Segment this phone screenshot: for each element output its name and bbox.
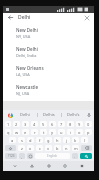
button[interactable]: Clear [83,14,90,21]
staticText: New Delhi [16,46,38,52]
button[interactable]: g [45,137,52,143]
button[interactable]: p [85,129,92,135]
button[interactable]: Google [7,112,13,118]
staticText: ?123 [8,154,15,158]
staticText: n [65,146,68,151]
staticText: a [11,138,14,143]
staticText: NJ, USA [16,91,30,96]
button[interactable]: q [5,129,11,135]
button[interactable]: Delhis [37,110,61,119]
button[interactable]: 5 [40,121,47,127]
staticText: LA, USA [16,72,30,77]
button[interactable]: b [54,145,61,151]
button[interactable]: Hide keyboard [10,161,20,171]
button[interactable]: 1 [5,121,11,127]
button[interactable]: shift [5,145,16,151]
staticText: r [34,130,36,135]
staticText: j [66,138,68,143]
staticText: 0 [87,122,90,127]
button[interactable]: symbols [5,153,17,159]
button[interactable]: 7 [58,121,65,127]
staticText: New Orleans [16,65,44,71]
button[interactable]: f [36,137,43,143]
staticText: m [74,146,78,151]
button[interactable]: n [63,145,70,151]
button[interactable]: l [81,137,88,143]
button[interactable]: Space [35,153,70,159]
button[interactable]: 6 [49,121,56,127]
button[interactable]: Home [44,161,54,171]
staticText: o [78,130,81,135]
button[interactable]: 0 [85,121,92,127]
button[interactable]: Back [27,161,37,171]
staticText: 5 [42,122,45,127]
staticText: Delhi [20,112,30,117]
button[interactable]: u [58,129,65,135]
button[interactable]: r [31,129,38,135]
button[interactable]: x [27,145,34,151]
staticText: 6 [51,122,54,127]
staticText: d [29,138,32,143]
button[interactable]: j [63,137,70,143]
staticText: New Delhi [16,27,38,33]
button[interactable]: o [76,129,83,135]
staticText: c [39,146,41,151]
button[interactable]: New Delhi [3,44,94,60]
staticText: 4 [33,122,36,127]
staticText: 7 [60,122,63,127]
button[interactable]: 2 [13,121,20,127]
staticText: Delhis [43,112,55,117]
staticText: . [74,154,76,159]
staticText: l [84,138,86,143]
button[interactable]: Search [80,153,92,159]
button[interactable]: t [40,129,47,135]
button[interactable]: Back [7,14,14,21]
button[interactable]: Back [3,13,94,22]
button[interactable]: c [36,145,43,151]
staticText: b [56,146,59,151]
button[interactable]: Delhi [13,110,37,119]
button[interactable]: 8 [67,121,74,127]
staticText: f [39,138,41,143]
button[interactable]: Newcastle [3,82,94,98]
staticText: k [74,138,77,143]
button[interactable]: w [13,129,20,135]
staticText: h [56,138,59,143]
button[interactable]: emoji [27,153,33,159]
staticText: 9 [78,122,81,127]
button[interactable]: delete [81,145,92,151]
button[interactable]: Menu [77,161,87,171]
button[interactable]: k [72,137,79,143]
button[interactable]: Delhi's [61,110,85,119]
button[interactable]: Voice input [85,111,92,118]
button[interactable]: 9 [76,121,83,127]
button[interactable]: v [45,145,52,151]
button[interactable]: i [67,129,74,135]
button[interactable]: a [9,137,16,143]
button[interactable]: 4 [31,121,38,127]
staticText: g [47,138,50,143]
button[interactable]: 3 [22,121,29,127]
staticText: u [60,130,63,135]
staticText: w [15,130,19,135]
staticText: 2 [15,122,18,127]
staticText: Delhi's [67,112,80,117]
staticText: NY, USA [16,34,31,39]
staticText: s [21,138,23,143]
button[interactable]: m [72,145,79,151]
button[interactable]: period [72,153,78,159]
button[interactable]: y [49,129,56,135]
staticText: z [21,146,23,151]
button[interactable]: s [18,137,25,143]
button[interactable]: comma [19,153,25,159]
button[interactable]: Recents [60,161,70,171]
staticText: Newcastle [16,84,39,90]
staticText: English [47,154,58,158]
staticText: i [70,130,72,135]
button[interactable]: New Delhi [3,25,94,41]
button[interactable]: New Orleans [3,63,94,79]
button[interactable]: z [18,145,25,151]
button[interactable]: e [22,129,29,135]
button[interactable]: d [27,137,34,143]
button[interactable]: h [54,137,61,143]
